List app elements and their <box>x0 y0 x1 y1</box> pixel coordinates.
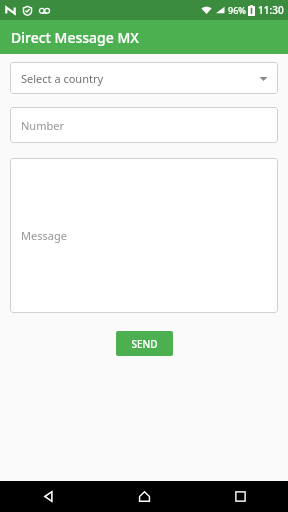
staticText: Message <box>21 228 67 243</box>
button[interactable]: Select a country <box>10 62 278 94</box>
staticText: 96% <box>228 4 246 16</box>
staticText: Select a country <box>21 71 104 86</box>
button[interactable]: Number <box>10 107 278 143</box>
button[interactable]: Home <box>122 481 166 512</box>
staticText: 11:30 <box>258 3 284 17</box>
staticText: SEND <box>131 337 158 351</box>
staticText: Direct Message MX <box>11 28 139 47</box>
staticText: Number <box>21 118 64 133</box>
button[interactable]: Back <box>26 481 70 512</box>
button[interactable]: SEND <box>116 331 173 356</box>
button[interactable]: Recent apps <box>218 481 262 512</box>
button[interactable]: Message <box>10 158 278 313</box>
